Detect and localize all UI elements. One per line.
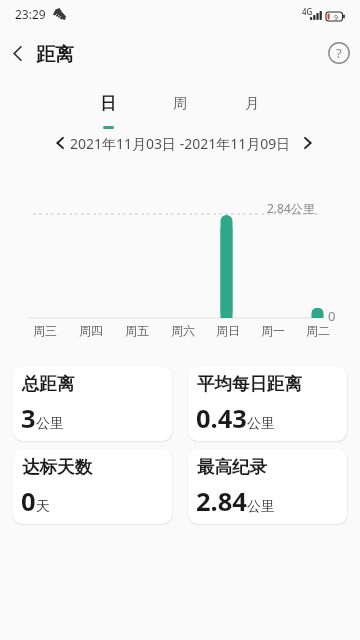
staticText: 9 bbox=[331, 13, 341, 23]
staticText: 2021年11月03日 -2021年11月09日 bbox=[70, 134, 291, 153]
staticText: 月 bbox=[245, 95, 259, 113]
staticText: 2.84 bbox=[196, 484, 247, 519]
button[interactable]: ? bbox=[327, 41, 351, 65]
button[interactable]: 周 bbox=[144, 92, 216, 116]
staticText: 0 bbox=[328, 307, 336, 325]
staticText: 平均每日距离 bbox=[197, 373, 302, 395]
staticText: 周二 bbox=[306, 323, 330, 338]
staticText: 周三 bbox=[33, 323, 57, 338]
button[interactable]: 日 bbox=[72, 92, 144, 116]
staticText: 距离 bbox=[36, 43, 74, 67]
staticText: 2.84公里 bbox=[267, 200, 315, 216]
button[interactable] bbox=[50, 131, 70, 155]
staticText: 周日 bbox=[216, 323, 240, 338]
staticText: 公里 bbox=[36, 415, 64, 433]
staticText: 达标天数 bbox=[22, 456, 92, 478]
staticText: 周五 bbox=[125, 323, 149, 338]
staticText: 3 bbox=[21, 401, 36, 436]
staticText: 公里 bbox=[247, 415, 275, 433]
staticText: 最高纪录 bbox=[197, 456, 267, 478]
button[interactable]: 平均每日距离 bbox=[188, 366, 347, 441]
staticText: 周一 bbox=[261, 323, 285, 338]
staticText: 天 bbox=[36, 498, 50, 516]
button[interactable]: 月 bbox=[216, 92, 287, 116]
button[interactable]: 最高纪录 bbox=[188, 449, 347, 524]
staticText: 公里 bbox=[247, 498, 275, 516]
staticText: 总距离 bbox=[22, 373, 75, 395]
staticText: 日 bbox=[100, 94, 116, 114]
button[interactable]: 总距离 bbox=[13, 366, 172, 441]
staticText: 0 bbox=[21, 484, 36, 519]
staticText: 0.43 bbox=[196, 401, 247, 436]
staticText: 周六 bbox=[171, 323, 195, 338]
staticText: 周 bbox=[173, 95, 187, 113]
button[interactable] bbox=[4, 40, 30, 66]
staticText: 周四 bbox=[79, 323, 103, 338]
button[interactable]: 达标天数 bbox=[13, 449, 172, 524]
staticText: 23:29 bbox=[15, 6, 46, 22]
staticText: ? bbox=[336, 44, 342, 62]
staticText: 4G bbox=[302, 6, 313, 17]
button[interactable] bbox=[298, 131, 318, 155]
